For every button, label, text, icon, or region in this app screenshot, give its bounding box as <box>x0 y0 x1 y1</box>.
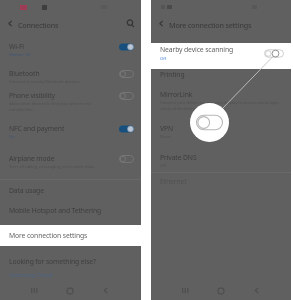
staticText: Connections <box>18 20 59 30</box>
staticText: Connect your device to your car's displa… <box>160 99 280 111</box>
button[interactable]: Wi-Fi <box>0 40 141 66</box>
staticText: Private DNS <box>160 153 197 162</box>
button[interactable]: VPN <box>151 122 291 148</box>
staticText: Bluetooth <box>9 69 40 78</box>
button[interactable]: MirrorLink <box>151 88 291 118</box>
button[interactable]: Back <box>2 15 18 31</box>
button[interactable]: NFC and payment <box>0 122 141 149</box>
staticText: Data usage <box>9 186 44 195</box>
button[interactable]: Bluetooth <box>0 67 141 90</box>
staticText: Wi-Fi <box>9 42 24 51</box>
staticText: NFC and payment <box>9 124 65 133</box>
staticText: VPN <box>160 124 173 133</box>
staticText: MirrorLink <box>160 90 193 99</box>
button[interactable]: Home <box>58 281 82 300</box>
staticText: Samsung Cloud <box>9 270 53 278</box>
staticText: Mobile Hotspot and Tethering <box>9 206 102 215</box>
staticText: Nearby device scanning <box>160 45 234 54</box>
staticText: Off <box>160 55 167 61</box>
button[interactable]: Recents <box>173 281 197 300</box>
button[interactable]: Data usage <box>0 184 141 204</box>
button[interactable]: Airplane mode <box>0 152 141 177</box>
button[interactable]: More connection settings <box>0 225 141 246</box>
button[interactable]: Looking for something else? <box>0 252 141 280</box>
staticText: Airplane mode <box>9 154 55 163</box>
staticText: Phone visibility <box>9 91 55 100</box>
button[interactable]: Phone visibility <box>0 89 141 120</box>
button[interactable]: Private DNS <box>151 151 291 177</box>
staticText: More connection settings <box>169 20 252 30</box>
staticText: Looking for something else? <box>9 257 96 266</box>
button[interactable]: Printing <box>151 68 291 88</box>
button[interactable]: Back <box>153 15 169 31</box>
button[interactable]: Home <box>209 281 233 300</box>
staticText: More connection settings <box>9 231 88 240</box>
button[interactable]: Search <box>121 14 139 32</box>
staticText: Turn off calling, messaging, and mobile … <box>9 163 104 169</box>
staticText: Ethernet <box>160 177 187 186</box>
button[interactable]: Nearby device scanning <box>151 43 291 69</box>
button[interactable]: Recents <box>22 281 46 300</box>
button[interactable]: Mobile Hotspot and Tethering <box>0 204 141 222</box>
staticText: Printing <box>160 70 185 79</box>
staticText: None <box>160 133 255 139</box>
staticText: Mateen_5G <box>9 51 104 57</box>
